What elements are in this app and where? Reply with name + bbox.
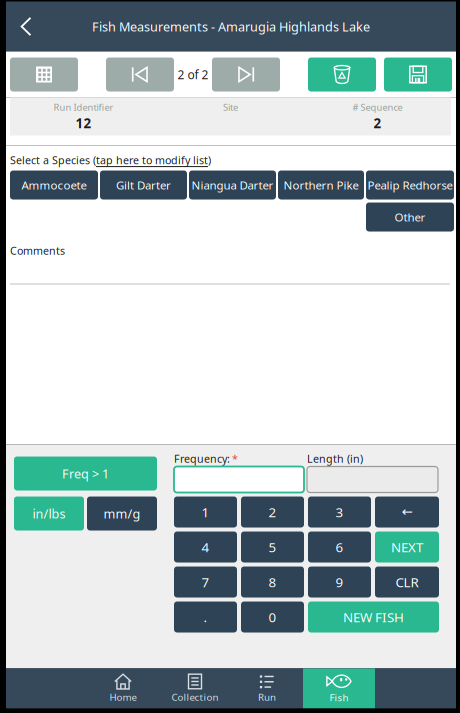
staticText: tap here to modify list <box>96 153 208 167</box>
staticText: # Sequence <box>352 101 402 113</box>
button[interactable]: 3 <box>308 496 371 527</box>
staticText: 5 <box>268 538 276 556</box>
staticText: 8 <box>268 573 276 591</box>
button[interactable]: Freq > 1 <box>14 456 157 490</box>
staticText: ) <box>208 153 211 167</box>
button[interactable]: 2 <box>241 496 304 527</box>
button[interactable]: NEW FISH <box>308 601 439 632</box>
button[interactable]: Previous record <box>106 57 174 91</box>
button[interactable]: Fish <box>303 668 375 708</box>
button[interactable]: Niangua Darter <box>189 170 276 199</box>
staticText: Length (in) <box>307 451 363 466</box>
staticText: Home <box>109 690 136 704</box>
button[interactable]: 4 <box>174 531 237 562</box>
staticText: NEXT <box>391 538 423 556</box>
button[interactable]: Home <box>87 668 159 708</box>
button[interactable]: NEXT <box>375 531 439 562</box>
button[interactable]: mm/g <box>87 496 157 530</box>
button[interactable]: 5 <box>241 531 304 562</box>
button[interactable]: Gilt Darter <box>100 170 187 199</box>
staticText: Niangua Darter <box>191 177 273 193</box>
button[interactable]: Delete <box>308 57 376 91</box>
button[interactable]: 6 <box>308 531 371 562</box>
staticText: Other <box>394 209 425 225</box>
staticText: Fish <box>329 691 348 704</box>
button[interactable]: Next record <box>212 57 280 91</box>
staticText: 2 <box>373 114 381 132</box>
button[interactable]: 8 <box>241 566 304 597</box>
staticText: 3 <box>335 503 343 521</box>
button[interactable]: Other <box>366 202 454 231</box>
staticText: 0 <box>268 608 276 626</box>
button[interactable]: in/lbs <box>14 496 84 530</box>
staticText: 2 <box>268 503 276 521</box>
staticText: NEW FISH <box>343 608 404 626</box>
button[interactable]: 9 <box>308 566 371 597</box>
staticText: in/lbs <box>32 505 65 522</box>
staticText: ← <box>401 504 412 519</box>
staticText: 4 <box>201 538 209 556</box>
button[interactable]: Back <box>6 1 46 51</box>
button[interactable]: ← <box>375 496 439 527</box>
button[interactable]: Collection <box>159 668 231 708</box>
staticText: Ammocoete <box>21 177 86 193</box>
staticText: 6 <box>335 538 343 556</box>
button[interactable]: Run <box>231 668 303 708</box>
staticText: 9 <box>335 573 343 591</box>
button[interactable]: 7 <box>174 566 237 597</box>
button[interactable]: . <box>174 601 237 632</box>
staticText: . <box>203 608 207 626</box>
button[interactable]: Ammocoete <box>10 170 98 199</box>
button[interactable]: Northern Pike <box>278 170 364 199</box>
staticText: Select a Species ( <box>10 153 96 167</box>
staticText: Northern Pike <box>283 177 358 193</box>
staticText: Run Identifier <box>53 101 113 113</box>
staticText: * <box>232 451 238 466</box>
button[interactable]: 1 <box>174 496 237 527</box>
button[interactable]: 0 <box>241 601 304 632</box>
staticText: mm/g <box>103 505 140 522</box>
staticText: Freq > 1 <box>62 465 109 482</box>
staticText: Collection <box>171 690 218 704</box>
button[interactable]: Pealip Redhorse <box>366 170 454 199</box>
staticText: 7 <box>201 573 209 591</box>
staticText: Comments <box>10 243 65 258</box>
staticText: Pealip Redhorse <box>367 177 452 193</box>
button[interactable]: Grid view <box>10 57 78 91</box>
staticText: 12 <box>75 114 91 132</box>
staticText: CLR <box>395 573 418 591</box>
staticText: 1 <box>201 503 209 521</box>
staticText: Gilt Darter <box>116 177 171 193</box>
staticText: Frequency: <box>174 451 230 466</box>
staticText: Site <box>223 101 238 113</box>
button[interactable]: CLR <box>375 566 439 597</box>
staticText: 2 of 2 <box>177 66 208 82</box>
staticText: Fish Measurements - Amarugia Highlands L… <box>92 18 370 35</box>
staticText: Run <box>258 690 276 704</box>
button[interactable]: tap here to modify list <box>96 153 208 167</box>
button[interactable]: Save <box>384 57 452 91</box>
